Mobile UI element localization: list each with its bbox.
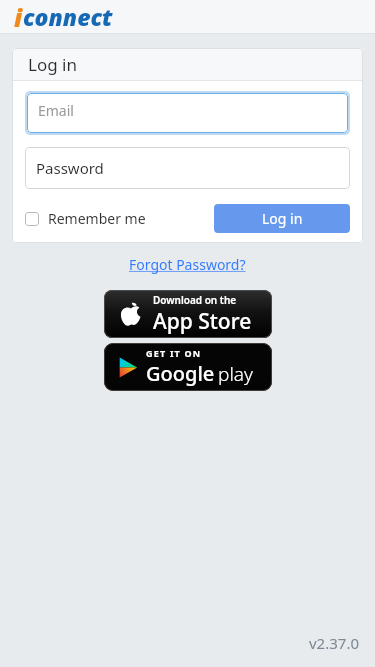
- staticText: Password: [36, 158, 104, 178]
- staticText: connect: [23, 1, 113, 32]
- staticText: Log in: [28, 53, 77, 76]
- staticText: Google: [146, 360, 215, 387]
- button[interactable]: Log in: [214, 204, 350, 233]
- staticText: Log in: [262, 209, 303, 228]
- staticText: play: [218, 361, 253, 387]
- button[interactable]: Remember me: [25, 209, 146, 228]
- button[interactable]: Password: [25, 147, 350, 189]
- button[interactable]: Get it on Google Play: [104, 343, 272, 391]
- staticText: Remember me: [48, 209, 146, 228]
- staticText: App Store: [153, 307, 252, 336]
- staticText: Email: [38, 101, 74, 120]
- staticText: v2.37.0: [309, 633, 359, 653]
- staticText: GET IT ON: [146, 347, 202, 359]
- button[interactable]: Forgot Password?: [125, 251, 250, 278]
- button[interactable]: Download on the App Store: [104, 290, 272, 338]
- staticText: Download on the: [153, 293, 237, 307]
- staticText: i: [14, 0, 23, 33]
- button[interactable]: Email: [27, 93, 348, 133]
